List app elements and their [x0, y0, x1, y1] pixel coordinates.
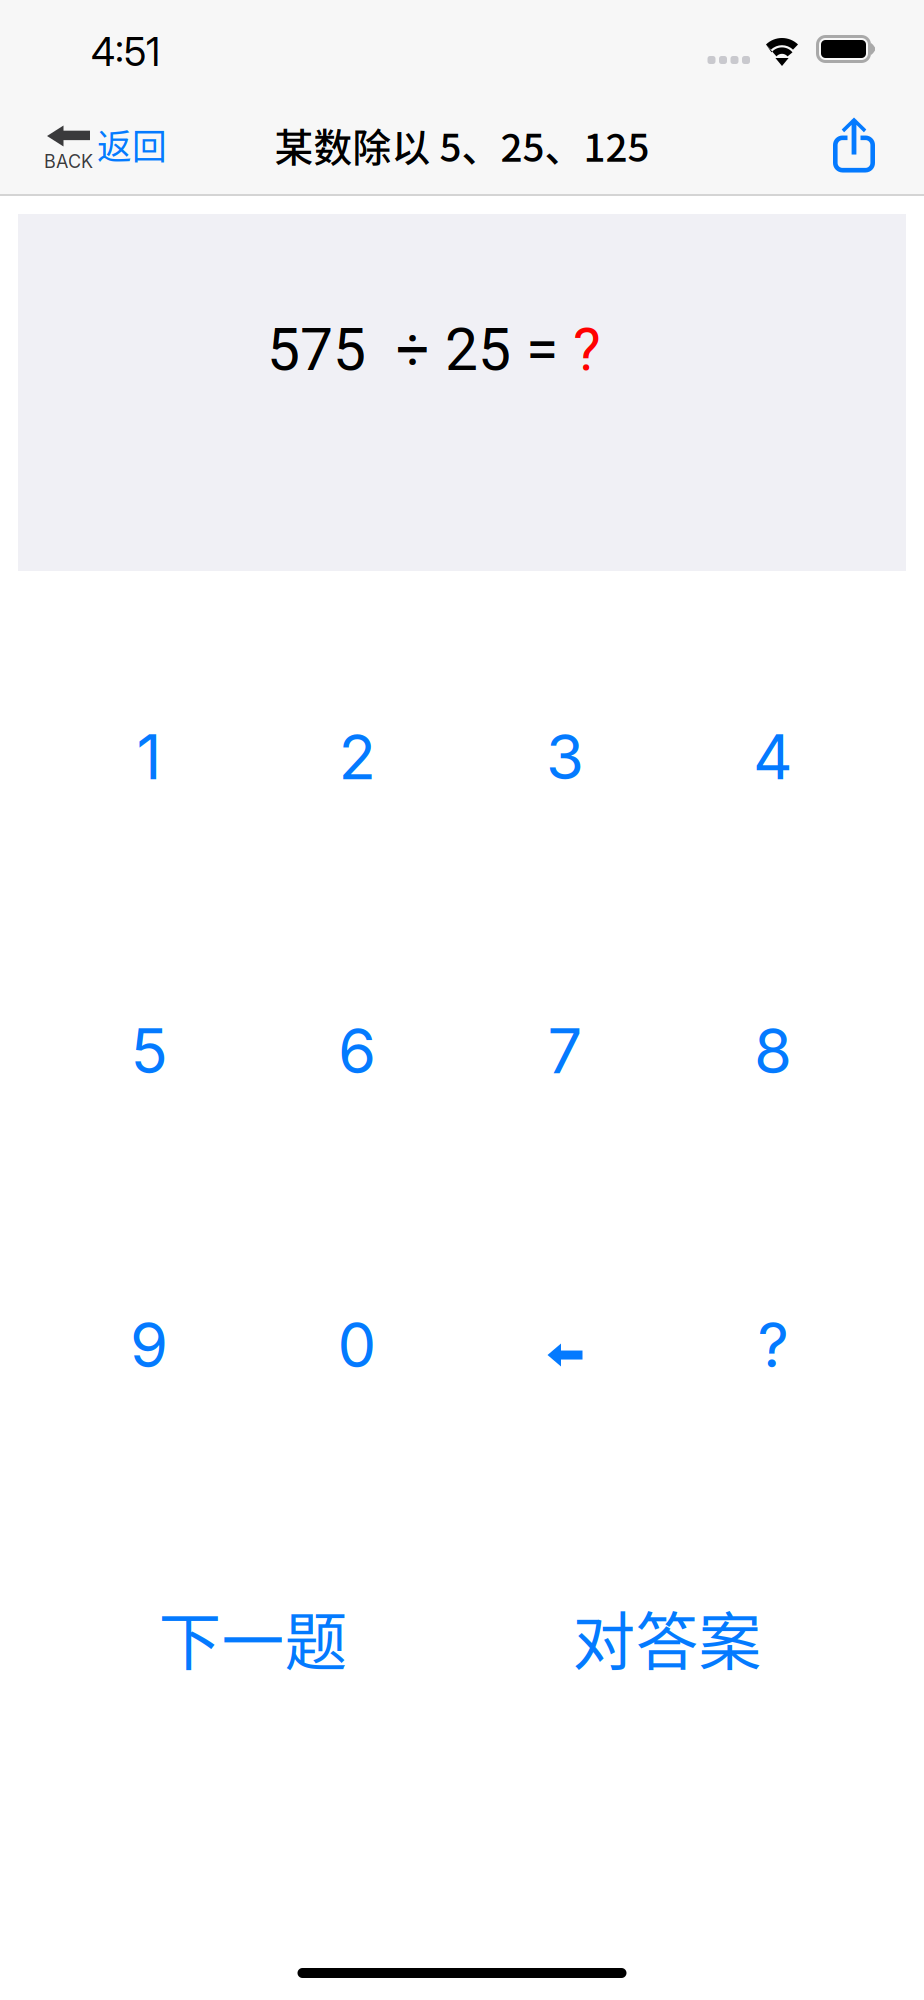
button[interactable]: 8 [669, 947, 877, 1155]
button[interactable]: ? [669, 1241, 877, 1449]
button[interactable]: 7 [461, 947, 669, 1155]
staticText: 1 [136, 720, 161, 794]
staticText: 返回 [97, 119, 167, 170]
button[interactable]: 2 [253, 653, 461, 861]
staticText: 575 ÷ 25 = [267, 316, 573, 384]
staticText: 对答案 [572, 1592, 761, 1682]
staticText: 某数除以 5、25、125 [274, 117, 649, 173]
button[interactable]: Backspace [461, 1241, 669, 1449]
button[interactable]: 0 [253, 1241, 461, 1449]
staticText: 4 [753, 720, 793, 794]
staticText: 下一题 [158, 1592, 347, 1682]
staticText: 7 [547, 1014, 582, 1088]
button[interactable]: 5 [45, 947, 253, 1155]
button[interactable]: 1 [45, 653, 253, 861]
button[interactable]: BACK [0, 97, 179, 193]
staticText: 5 [130, 1014, 167, 1088]
button[interactable]: 9 [45, 1241, 253, 1449]
button[interactable]: Share [807, 97, 924, 193]
staticText: 6 [338, 1014, 376, 1088]
button[interactable]: 对答案 [507, 1581, 827, 1693]
button[interactable]: 下一题 [93, 1581, 413, 1693]
button[interactable]: 3 [461, 653, 669, 861]
button[interactable]: 4 [669, 653, 877, 861]
staticText: 8 [754, 1014, 792, 1088]
staticText: ? [573, 316, 601, 384]
staticText: 9 [130, 1308, 168, 1382]
staticText: 4:51 [91, 29, 160, 75]
staticText: ? [757, 1308, 788, 1382]
staticText: 3 [546, 720, 584, 794]
staticText: 0 [337, 1308, 376, 1382]
staticText: 2 [338, 720, 375, 794]
button[interactable]: 6 [253, 947, 461, 1155]
staticText: BACK [44, 150, 93, 172]
